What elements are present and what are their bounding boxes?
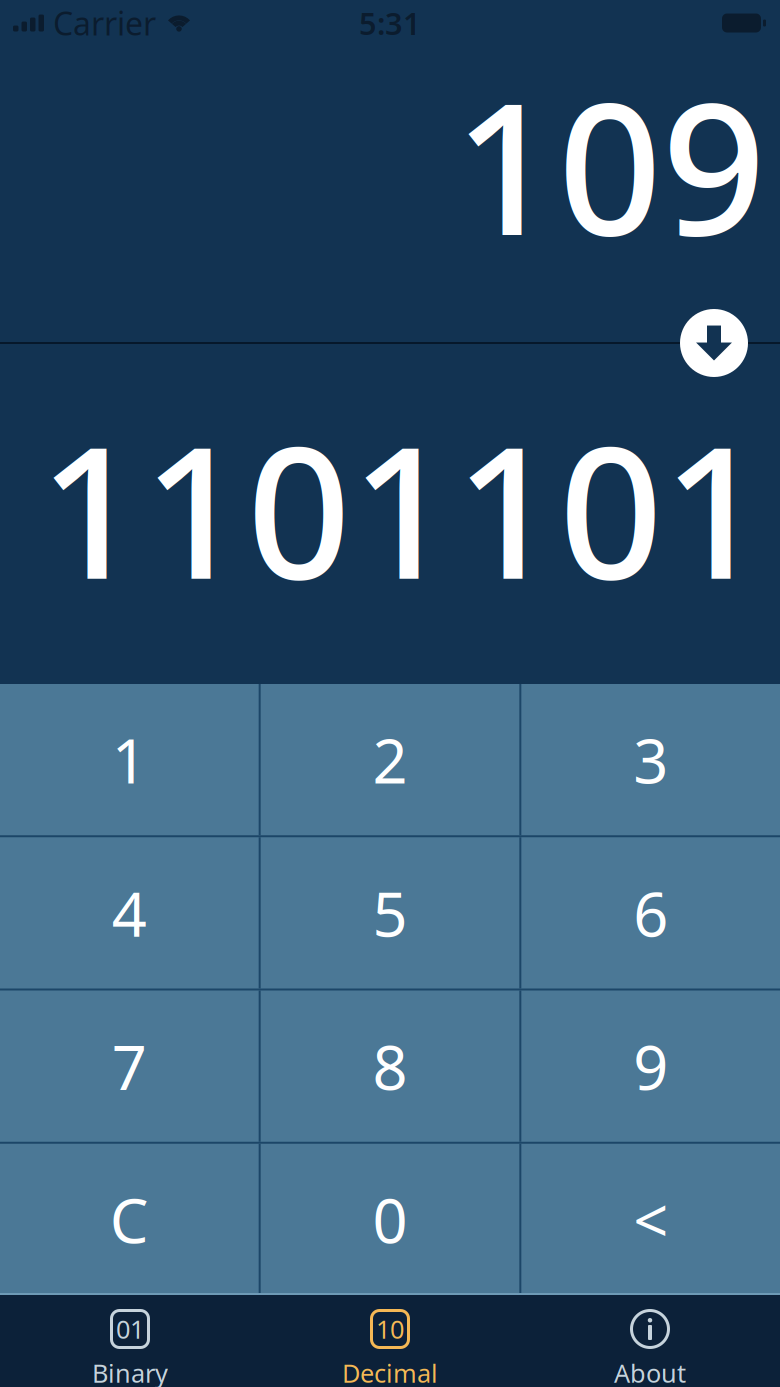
- button[interactable]: 5: [261, 837, 519, 988]
- staticText: 7: [112, 1025, 147, 1107]
- staticText: 1101101: [39, 388, 767, 629]
- staticText: 5: [372, 872, 407, 954]
- staticText: 2: [372, 719, 407, 800]
- staticText: 8: [372, 1025, 407, 1107]
- staticText: About: [614, 1356, 686, 1387]
- button[interactable]: Convert: [680, 309, 748, 377]
- staticText: 5:31: [359, 3, 421, 43]
- button[interactable]: 9: [521, 990, 780, 1142]
- staticText: C: [110, 1179, 149, 1260]
- button[interactable]: <: [521, 1144, 780, 1295]
- staticText: 3: [633, 719, 668, 800]
- button[interactable]: 2: [261, 684, 519, 835]
- button[interactable]: 4: [0, 837, 259, 988]
- button[interactable]: 1: [0, 684, 259, 835]
- button[interactable]: 7: [0, 990, 259, 1142]
- staticText: <: [633, 1179, 668, 1260]
- button[interactable]: 6: [521, 837, 780, 988]
- staticText: 1: [112, 719, 147, 800]
- staticText: 9: [633, 1025, 668, 1107]
- staticText: 0: [372, 1179, 407, 1260]
- button[interactable]: About: [520, 1295, 780, 1387]
- staticText: 10: [376, 1312, 404, 1346]
- button[interactable]: 0: [261, 1144, 519, 1295]
- staticText: Decimal: [342, 1356, 438, 1387]
- staticText: 4: [112, 872, 147, 954]
- button[interactable]: C: [0, 1144, 259, 1295]
- staticText: 6: [633, 872, 668, 954]
- button[interactable]: 10: [260, 1295, 520, 1387]
- button[interactable]: 01: [0, 1295, 260, 1387]
- staticText: 109: [454, 44, 766, 285]
- staticText: Binary: [92, 1356, 168, 1387]
- staticText: 01: [116, 1312, 144, 1346]
- button[interactable]: 3: [521, 684, 780, 835]
- staticText: Carrier: [53, 2, 156, 44]
- button[interactable]: 8: [261, 990, 519, 1142]
